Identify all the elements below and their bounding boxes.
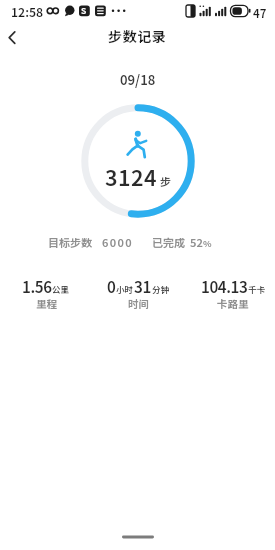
staticText: 52	[190, 234, 203, 250]
staticText: 步	[160, 173, 171, 189]
staticText: %	[203, 237, 212, 250]
staticText: S	[81, 4, 87, 16]
staticText: 千卡	[248, 283, 266, 295]
staticText: 31	[134, 275, 151, 297]
staticText: 步数记录	[108, 26, 167, 46]
staticText: 时间	[128, 296, 149, 311]
staticText: 已完成	[152, 234, 185, 250]
staticText: 卡路里	[217, 296, 249, 311]
staticText: 1.56	[22, 275, 52, 297]
staticText: 公里	[52, 283, 70, 295]
staticText: 6000	[102, 234, 133, 250]
staticText: 0	[107, 275, 116, 297]
staticText: 104.13	[201, 275, 248, 297]
staticText: 3124	[105, 161, 158, 192]
staticText: 09/18	[120, 70, 156, 89]
staticText: 12:58	[11, 3, 44, 21]
staticText: 47	[253, 5, 267, 22]
staticText: 小时	[116, 283, 134, 295]
staticText: 分钟	[152, 283, 170, 295]
staticText: 里程	[36, 296, 57, 311]
staticText: 目标步数	[48, 234, 92, 250]
